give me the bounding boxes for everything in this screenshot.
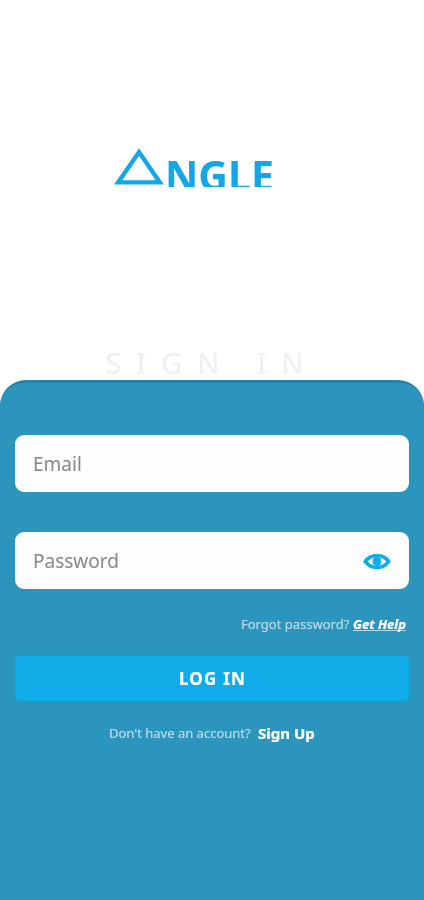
button[interactable]: Password [15, 532, 409, 589]
staticText: LOG IN [179, 667, 246, 690]
staticText: Email [33, 451, 82, 477]
staticText: SIGN IN [0, 343, 424, 382]
button[interactable]: LOG IN [15, 656, 409, 701]
staticText: Password [33, 548, 119, 574]
staticText: Get Help [353, 615, 406, 633]
staticText: NGLE [165, 147, 274, 187]
staticText: Sign Up [258, 723, 315, 743]
button[interactable]: Get Help [353, 615, 406, 633]
staticText: Don't have an account? [109, 724, 258, 742]
button[interactable]: Show password [359, 543, 395, 579]
staticText: Forgot password? [241, 615, 353, 633]
button[interactable]: Email [15, 435, 409, 492]
button[interactable]: Sign Up [258, 723, 315, 743]
